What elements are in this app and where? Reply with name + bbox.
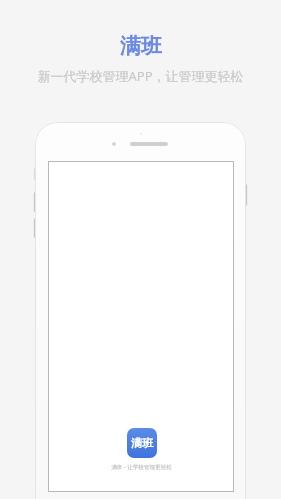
staticText: 满班	[120, 33, 162, 59]
staticText: 新一代学校管理APP，让管理更轻松	[37, 67, 244, 85]
button[interactable]: 满班 app icon	[111, 428, 172, 471]
staticText: 满班	[131, 436, 153, 450]
staticText: 满班 - 让学校管理更轻松	[111, 463, 172, 471]
